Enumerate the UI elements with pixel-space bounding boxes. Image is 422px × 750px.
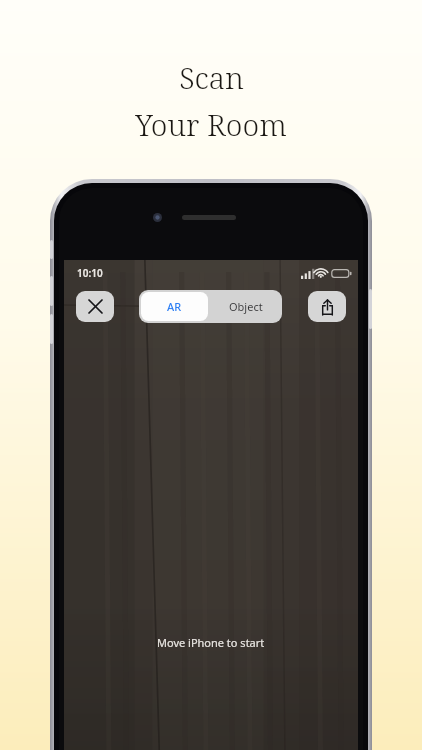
button[interactable]: Object: [210, 290, 282, 323]
staticText: 10:10: [77, 266, 103, 280]
button[interactable]: Close: [76, 291, 114, 322]
staticText: Object: [229, 299, 263, 314]
button[interactable]: Share: [308, 291, 346, 322]
staticText: Move iPhone to start: [157, 635, 265, 650]
button[interactable]: AR: [139, 290, 210, 323]
staticText: Your Room: [135, 104, 287, 145]
staticText: AR: [167, 299, 182, 314]
staticText: Scan: [179, 57, 244, 98]
